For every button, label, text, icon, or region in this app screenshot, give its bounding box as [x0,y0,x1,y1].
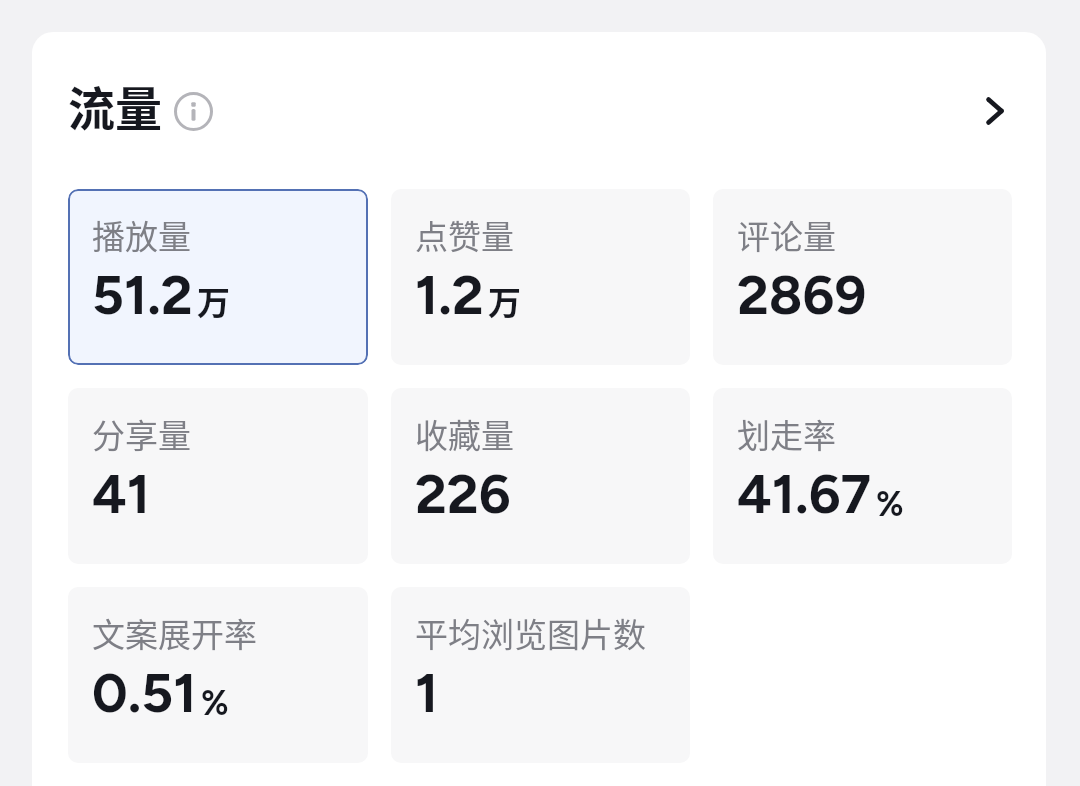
staticText: 41.67 [737,461,872,527]
button[interactable]: 流量 [32,32,1046,189]
staticText: 平均浏览图片数 [415,609,646,657]
staticText: 2869 [737,262,867,328]
staticText: 流量 [68,71,162,139]
staticText: 点赞量 [415,211,514,259]
staticText: 万 [488,277,521,325]
button[interactable]: 评论量 [713,189,1012,365]
staticText: 文案展开率 [92,609,257,657]
staticText: 划走率 [737,410,836,458]
staticText: 收藏量 [415,410,514,458]
button[interactable]: Info [174,92,213,131]
staticText: 0.51 [92,660,197,726]
button[interactable]: More [978,94,1012,128]
button[interactable]: 分享量 [68,388,368,564]
button[interactable]: 文案展开率 [68,587,368,763]
staticText: 41 [92,461,151,527]
button[interactable]: 点赞量 [391,189,690,365]
staticText: 万 [197,277,230,325]
staticText: 播放量 [92,211,191,259]
staticText: 51.2 [92,262,193,328]
staticText: 1.2 [415,262,484,328]
staticText: 评论量 [737,211,836,259]
staticText: % [201,683,229,724]
staticText: 1 [415,660,439,726]
button[interactable]: 播放量 [68,189,368,365]
staticText: % [876,484,904,525]
staticText: 分享量 [92,410,191,458]
button[interactable]: 划走率 [713,388,1012,564]
staticText: 226 [415,461,511,527]
button[interactable]: 收藏量 [391,388,690,564]
button[interactable]: 平均浏览图片数 [391,587,690,763]
